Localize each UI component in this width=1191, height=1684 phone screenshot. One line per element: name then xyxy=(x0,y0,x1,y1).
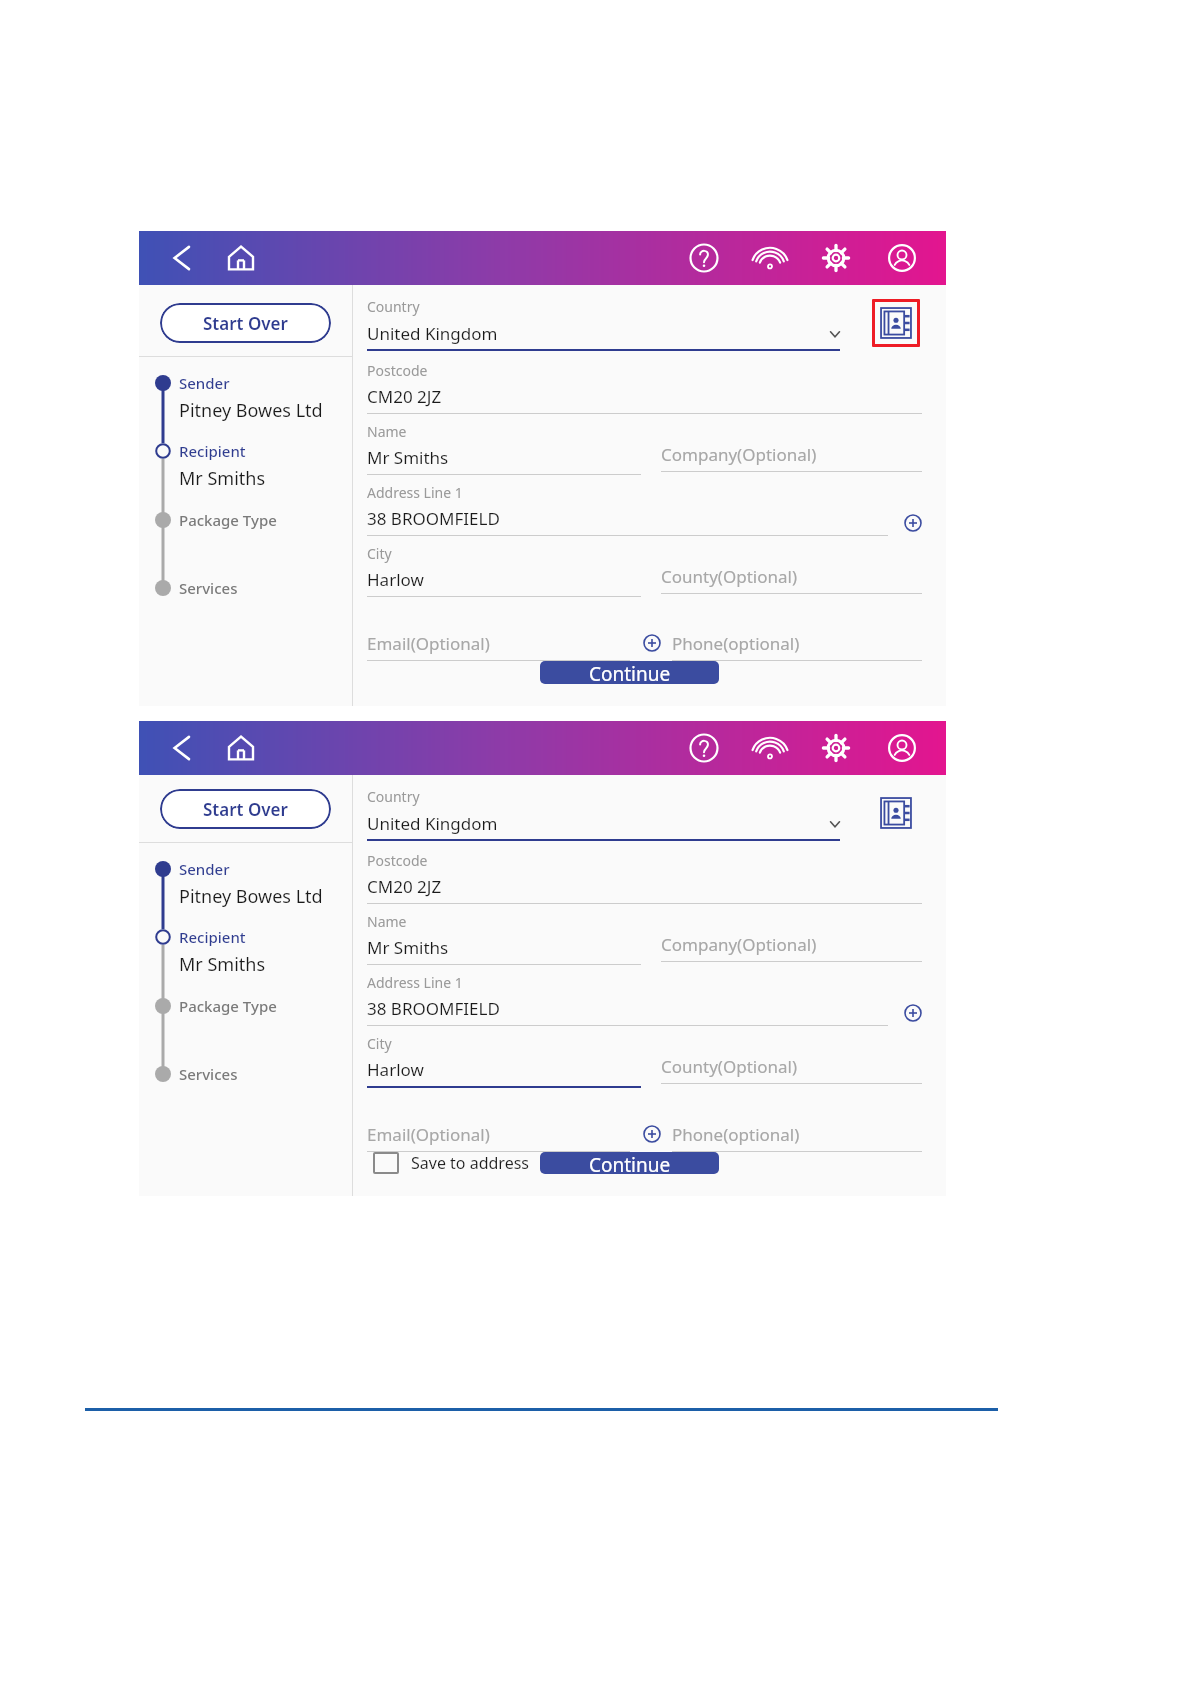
button[interactable]: Address Line 1 xyxy=(367,483,888,536)
button[interactable]: Home xyxy=(219,236,263,280)
button[interactable]: Phone(optional) xyxy=(672,1102,922,1152)
button[interactable]: Name xyxy=(367,422,641,475)
button[interactable]: Account xyxy=(880,236,924,280)
button[interactable]: Back xyxy=(161,726,205,770)
button[interactable]: Sender xyxy=(139,859,352,909)
staticText: Services xyxy=(179,578,238,598)
button[interactable]: City xyxy=(367,1034,641,1088)
button[interactable]: Address book xyxy=(870,787,922,839)
button[interactable]: Country xyxy=(367,787,860,841)
button[interactable]: Help xyxy=(682,236,726,280)
staticText: Country xyxy=(367,297,420,316)
staticText: Continue xyxy=(589,1152,671,1174)
button[interactable]: City xyxy=(367,544,641,597)
button[interactable]: Sender xyxy=(139,373,352,423)
staticText: Postcode xyxy=(367,851,428,870)
staticText: Package Type xyxy=(179,510,277,530)
button[interactable]: Postcode xyxy=(367,851,922,904)
staticText: Email(Optional) xyxy=(367,1123,490,1146)
button[interactable]: Package Type xyxy=(139,996,352,1016)
staticText: City xyxy=(367,544,392,563)
button[interactable]: Home xyxy=(219,726,263,770)
staticText: Start Over xyxy=(203,798,288,821)
staticText: Mr Smiths xyxy=(179,952,266,977)
button[interactable]: Phone(optional) xyxy=(672,611,922,661)
staticText: Mr Smiths xyxy=(367,936,449,959)
staticText: 38 BROOMFIELD xyxy=(367,507,500,530)
button[interactable]: Email(Optional) xyxy=(367,611,630,661)
staticText: County(Optional) xyxy=(661,1055,798,1078)
button[interactable]: Services xyxy=(139,1064,352,1084)
button[interactable]: Email(Optional) xyxy=(367,1102,630,1152)
staticText: Services xyxy=(179,1064,238,1084)
staticText: United Kingdom xyxy=(367,322,498,345)
button[interactable]: Settings xyxy=(814,726,858,770)
staticText: CM20 2JZ xyxy=(367,875,442,898)
button[interactable]: Country xyxy=(367,297,860,351)
staticText: Country xyxy=(367,787,420,806)
button[interactable]: Start Over xyxy=(160,303,331,343)
button[interactable]: Package Type xyxy=(139,510,352,530)
staticText: Sender xyxy=(179,859,230,879)
staticText: Start Over xyxy=(203,312,288,335)
button[interactable]: Services xyxy=(139,578,352,598)
staticText: County(Optional) xyxy=(661,565,798,588)
button[interactable]: Add email xyxy=(640,631,664,655)
button[interactable]: Save to address xyxy=(373,1152,529,1174)
staticText: City xyxy=(367,1034,392,1053)
button[interactable]: Recipient xyxy=(139,441,352,491)
button[interactable]: County(Optional) xyxy=(661,1034,922,1084)
button[interactable]: Settings xyxy=(814,236,858,280)
staticText: Recipient xyxy=(179,441,246,461)
staticText: Pitney Bowes Ltd xyxy=(179,884,323,909)
staticText: Harlow xyxy=(367,1058,424,1081)
staticText: Save to address xyxy=(411,1152,529,1174)
button[interactable]: Help xyxy=(682,726,726,770)
staticText: Package Type xyxy=(179,996,277,1016)
button[interactable]: Wifi xyxy=(748,726,792,770)
staticText: Pitney Bowes Ltd xyxy=(179,398,323,423)
staticText: Company(Optional) xyxy=(661,933,817,956)
staticText: Phone(optional) xyxy=(672,1123,800,1146)
button[interactable]: Wifi xyxy=(748,236,792,280)
button[interactable]: Continue xyxy=(540,661,719,684)
button[interactable]: Address Line 1 xyxy=(367,973,888,1026)
staticText: United Kingdom xyxy=(367,812,498,835)
button[interactable]: Company(Optional) xyxy=(661,912,922,962)
button[interactable]: Add email xyxy=(640,1122,664,1146)
button[interactable]: Add address line xyxy=(900,510,926,536)
button[interactable]: Name xyxy=(367,912,641,965)
button[interactable]: Recipient xyxy=(139,927,352,977)
staticText: Company(Optional) xyxy=(661,443,817,466)
staticText: 38 BROOMFIELD xyxy=(367,997,500,1020)
staticText: Mr Smiths xyxy=(179,466,266,491)
staticText: Continue xyxy=(589,661,671,684)
button[interactable]: Company(Optional) xyxy=(661,422,922,472)
staticText: Recipient xyxy=(179,927,246,947)
staticText: CM20 2JZ xyxy=(367,385,442,408)
staticText: Postcode xyxy=(367,361,428,380)
button[interactable]: Continue xyxy=(540,1152,719,1174)
staticText: Name xyxy=(367,912,407,931)
button[interactable]: Back xyxy=(161,236,205,280)
staticText: Name xyxy=(367,422,407,441)
button[interactable]: Add address line xyxy=(900,1000,926,1026)
button[interactable]: Address book xyxy=(870,297,922,349)
staticText: Phone(optional) xyxy=(672,632,800,655)
button[interactable]: Postcode xyxy=(367,361,922,414)
staticText: Email(Optional) xyxy=(367,632,490,655)
button[interactable]: Start Over xyxy=(160,789,331,829)
staticText: Mr Smiths xyxy=(367,446,449,469)
staticText: Sender xyxy=(179,373,230,393)
button[interactable]: County(Optional) xyxy=(661,544,922,594)
staticText: Address Line 1 xyxy=(367,483,463,502)
button[interactable]: Account xyxy=(880,726,924,770)
staticText: Address Line 1 xyxy=(367,973,463,992)
staticText: Harlow xyxy=(367,568,424,591)
